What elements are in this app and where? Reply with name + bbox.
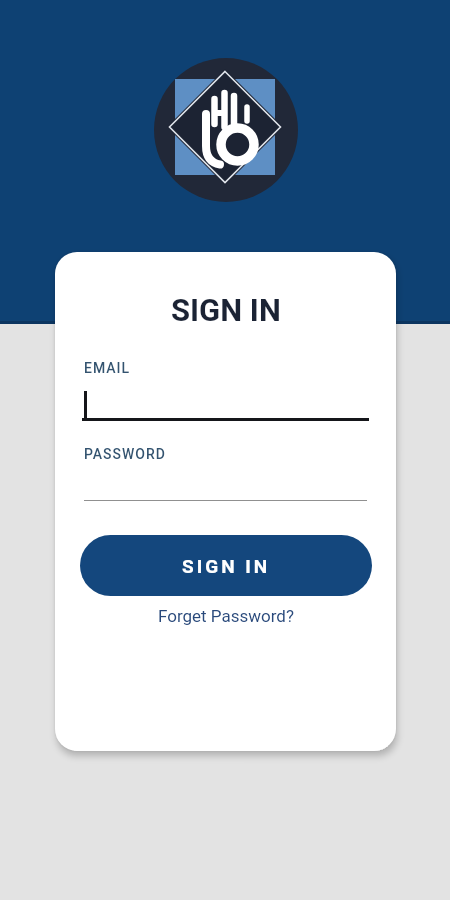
button[interactable]: Forget Password?	[158, 606, 294, 626]
staticText: EMAIL	[84, 360, 131, 376]
staticText: PASSWORD	[84, 446, 166, 462]
staticText: SIGN IN	[171, 292, 281, 328]
staticText: SIGN IN	[182, 555, 271, 577]
button[interactable]: SIGN IN	[80, 535, 372, 596]
